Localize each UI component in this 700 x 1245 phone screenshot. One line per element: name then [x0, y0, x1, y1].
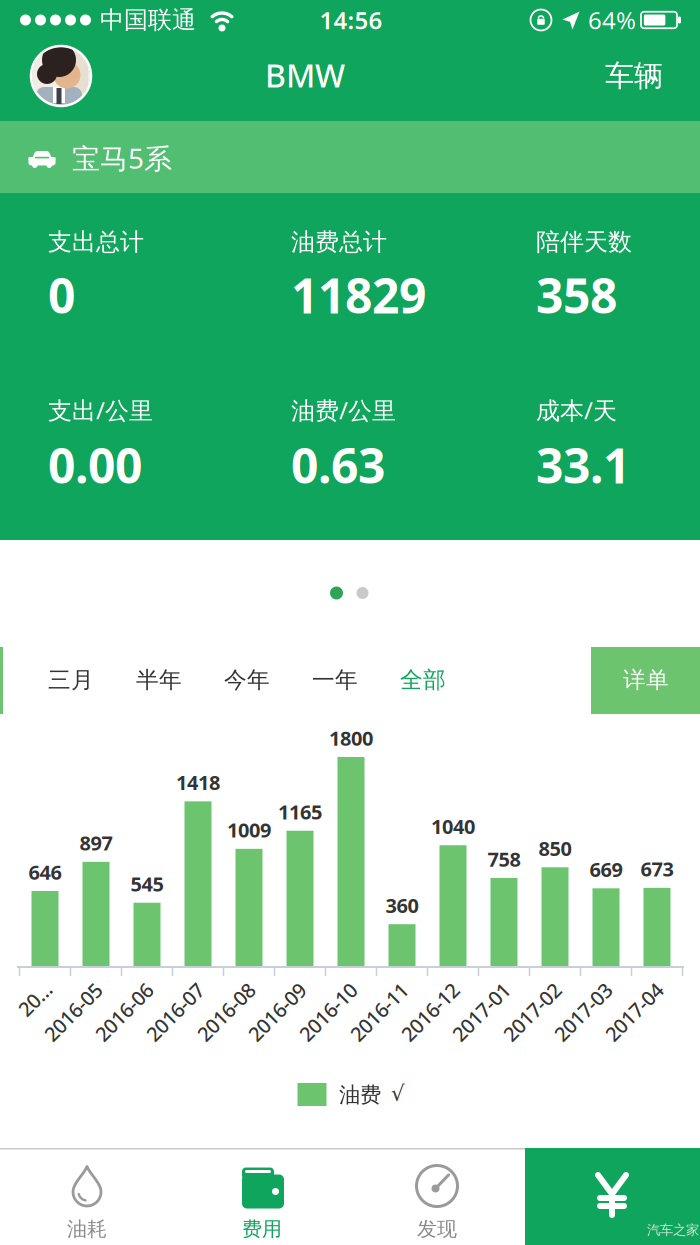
staticText: 陪伴天数: [536, 227, 632, 257]
staticText: 2016-08: [190, 999, 262, 1025]
staticText: 油费总计: [291, 227, 387, 257]
staticText: 1800: [329, 725, 373, 751]
staticText: 1165: [278, 798, 322, 825]
staticText: 2016-09: [241, 999, 313, 1025]
staticText: 成本/天: [536, 394, 617, 426]
staticText: 897: [79, 830, 112, 856]
staticText: 2016-10: [292, 999, 364, 1025]
staticText: √: [391, 1081, 405, 1105]
staticText: 油费/公里: [291, 394, 396, 426]
staticText: 汽车之家: [647, 1222, 699, 1238]
staticText: 费用: [242, 1217, 282, 1241]
staticText: 支出/公里: [48, 394, 153, 426]
staticText: 三月: [48, 666, 94, 694]
staticText: 1418: [176, 769, 220, 796]
staticText: 油耗: [67, 1217, 107, 1241]
staticText: 0.63: [291, 433, 385, 497]
staticText: 850: [538, 835, 571, 862]
staticText: 2017-04: [598, 999, 670, 1025]
staticText: 673: [640, 856, 673, 882]
staticText: 758: [487, 846, 520, 872]
staticText: 一年: [312, 666, 358, 694]
staticText: 14:56: [319, 4, 382, 36]
staticText: 中国联通: [100, 5, 196, 35]
staticText: 2016-11: [343, 999, 415, 1025]
staticText: 11829: [291, 263, 426, 327]
staticText: 车辆: [605, 58, 663, 94]
staticText: 2017-02: [496, 999, 568, 1025]
staticText: 64%: [588, 4, 636, 36]
staticText: 360: [385, 892, 418, 918]
staticText: 1009: [227, 817, 271, 843]
staticText: 0.00: [48, 433, 142, 497]
staticText: 33.1: [536, 433, 630, 497]
staticText: 2016-07: [139, 999, 211, 1025]
staticText: 0: [48, 263, 75, 327]
staticText: 半年: [136, 666, 182, 694]
staticText: 宝马5系: [72, 139, 172, 177]
staticText: 支出总计: [48, 227, 144, 257]
staticText: 2016-05: [37, 999, 109, 1025]
staticText: 545: [130, 870, 163, 897]
staticText: 发现: [417, 1217, 457, 1241]
staticText: 今年: [224, 666, 270, 694]
staticText: 2017-03: [547, 999, 619, 1025]
staticText: 2016-12: [394, 999, 466, 1025]
staticText: 669: [589, 856, 622, 883]
staticText: 1040: [431, 813, 475, 840]
staticText: 358: [536, 263, 617, 327]
staticText: 646: [28, 859, 61, 885]
staticText: BMW: [265, 54, 345, 96]
staticText: 全部: [400, 666, 446, 694]
staticText: 2017-01: [445, 999, 517, 1025]
staticText: 详单: [623, 666, 669, 694]
staticText: 油费: [339, 1082, 381, 1108]
staticText: 20…: [16, 986, 54, 1012]
staticText: 2016-06: [88, 999, 160, 1025]
